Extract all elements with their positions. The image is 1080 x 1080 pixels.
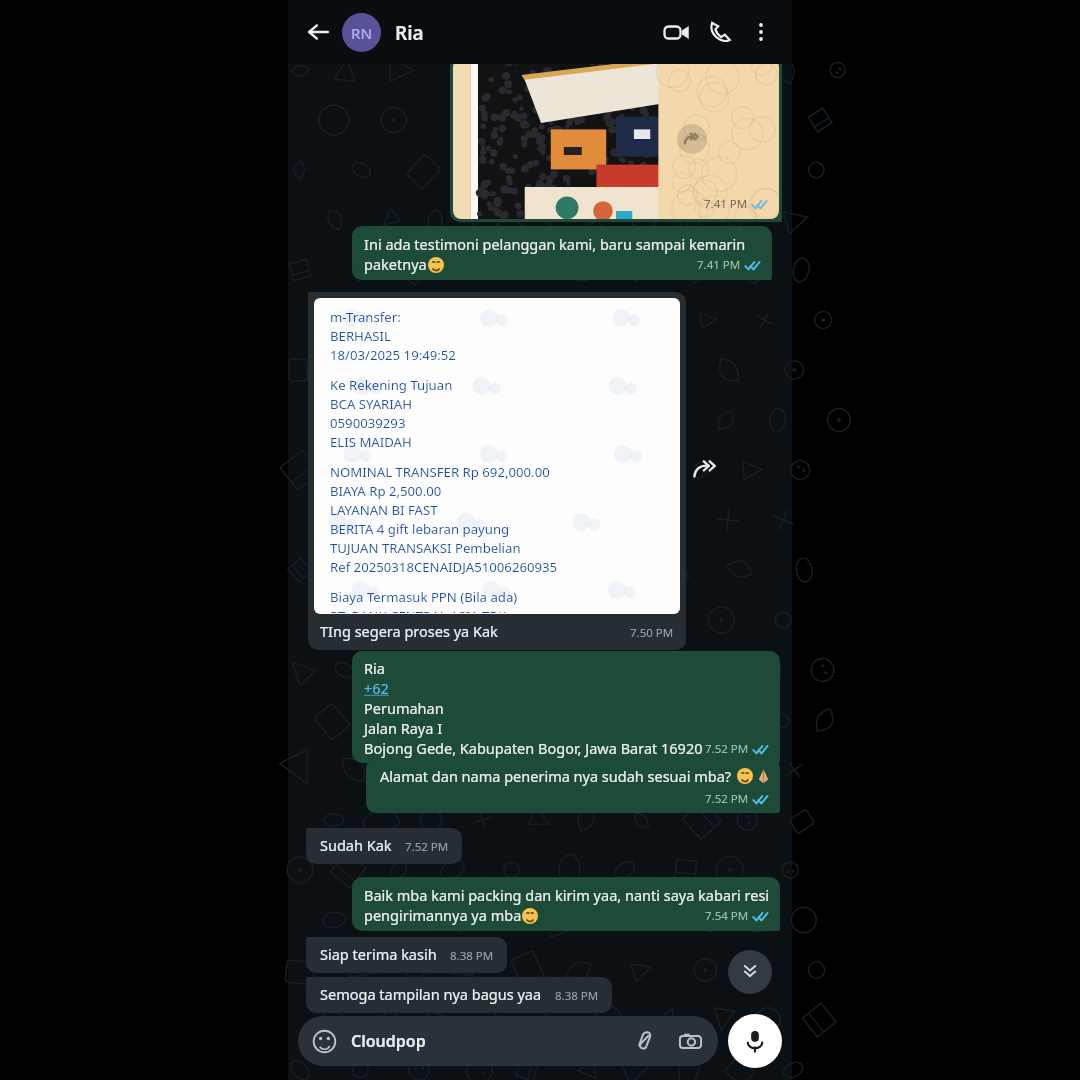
staticText: 7.41 PM: [704, 196, 748, 212]
staticText: Ke Rekening Tujuan: [330, 376, 453, 394]
staticText: 8.38 PM: [555, 988, 599, 1004]
staticText: paketnya: [364, 254, 427, 274]
button[interactable]: Attach: [629, 1026, 659, 1056]
button[interactable]: Voice call: [698, 10, 742, 54]
button[interactable]: Alamat dan nama penerima nya sudah sesua…: [366, 758, 780, 813]
button[interactable]: Emoji: [311, 1028, 337, 1054]
staticText: +62: [364, 678, 389, 698]
staticText: Baik mba kami packing dan kirim yaa, nan…: [364, 885, 770, 905]
staticText: ELIS MAIDAH: [330, 433, 412, 451]
button[interactable]: Forward: [684, 448, 728, 492]
button[interactable]: Back: [300, 14, 336, 50]
staticText: 18/03/2025 19:49:52: [330, 346, 456, 364]
staticText: Cloudpop: [351, 1030, 426, 1052]
staticText: Sudah Kak: [320, 835, 392, 855]
staticText: PT. BANK CENTRAL ASIA TBK.: [330, 607, 510, 613]
button[interactable]: Sudah Kak: [306, 828, 462, 864]
button[interactable]: Photo message: [453, 59, 779, 219]
staticText: Ini ada testimoni pelanggan kami, baru s…: [364, 234, 746, 254]
staticText: LAYANAN BI FAST: [330, 501, 438, 519]
staticText: pengirimannya ya mba: [364, 905, 522, 925]
staticText: 7.54 PM: [705, 908, 749, 924]
button[interactable]: More options: [742, 13, 780, 51]
staticText: 0590039293: [330, 414, 406, 432]
button[interactable]: Siap terima kasih: [306, 937, 507, 973]
staticText: 7.52 PM: [705, 741, 749, 757]
staticText: 7.41 PM: [697, 257, 741, 273]
staticText: Semoga tampilan nya bagus yaa: [320, 984, 542, 1004]
staticText: Perumahan: [364, 698, 444, 718]
staticText: Alamat dan nama penerima nya sudah sesua…: [380, 766, 732, 786]
button[interactable]: Emoji: [311, 1016, 705, 1066]
staticText: BERITA 4 gift lebaran payung: [330, 520, 510, 538]
staticText: 7.52 PM: [405, 839, 449, 855]
staticText: Ria: [395, 20, 424, 46]
staticText: TUJUAN TRANSAKSI Pembelian: [330, 539, 521, 557]
staticText: BERHASIL: [330, 327, 391, 345]
button[interactable]: RN: [342, 13, 654, 52]
staticText: Jalan Raya I: [364, 718, 443, 738]
button[interactable]: Semoga tampilan nya bagus yaa: [306, 977, 612, 1013]
staticText: BIAYA Rp 2,500.00: [330, 482, 442, 500]
staticText: TIng segera proses ya Kak: [320, 621, 498, 641]
staticText: Siap terima kasih: [320, 944, 437, 964]
staticText: 8.38 PM: [450, 948, 494, 964]
staticText: 7.52 PM: [705, 791, 749, 807]
staticText: Bojong Gede, Kabupaten Bogor, Jawa Barat…: [364, 738, 703, 758]
staticText: Ref 20250318CENAIDJA51006260935: [330, 558, 558, 576]
staticText: NOMINAL TRANSFER Rp 692,000.00: [330, 463, 550, 481]
staticText: RN: [351, 23, 373, 43]
button[interactable]: Scroll to bottom: [728, 950, 772, 994]
staticText: Ria: [364, 658, 385, 678]
button[interactable]: Ini ada testimoni pelanggan kami, baru s…: [352, 226, 772, 280]
button[interactable]: Video call: [654, 10, 698, 54]
staticText: 7.50 PM: [630, 625, 674, 641]
staticText: Biaya Termasuk PPN (Bila ada): [330, 588, 518, 606]
button[interactable]: Camera: [675, 1026, 705, 1056]
button[interactable]: Transfer receipt image: [308, 292, 686, 650]
button[interactable]: Ria: [352, 651, 780, 763]
staticText: BCA SYARIAH: [330, 395, 412, 413]
button[interactable]: Baik mba kami packing dan kirim yaa, nan…: [352, 877, 780, 931]
button[interactable]: Voice message: [728, 1014, 782, 1068]
staticText: m-Transfer:: [330, 308, 401, 326]
